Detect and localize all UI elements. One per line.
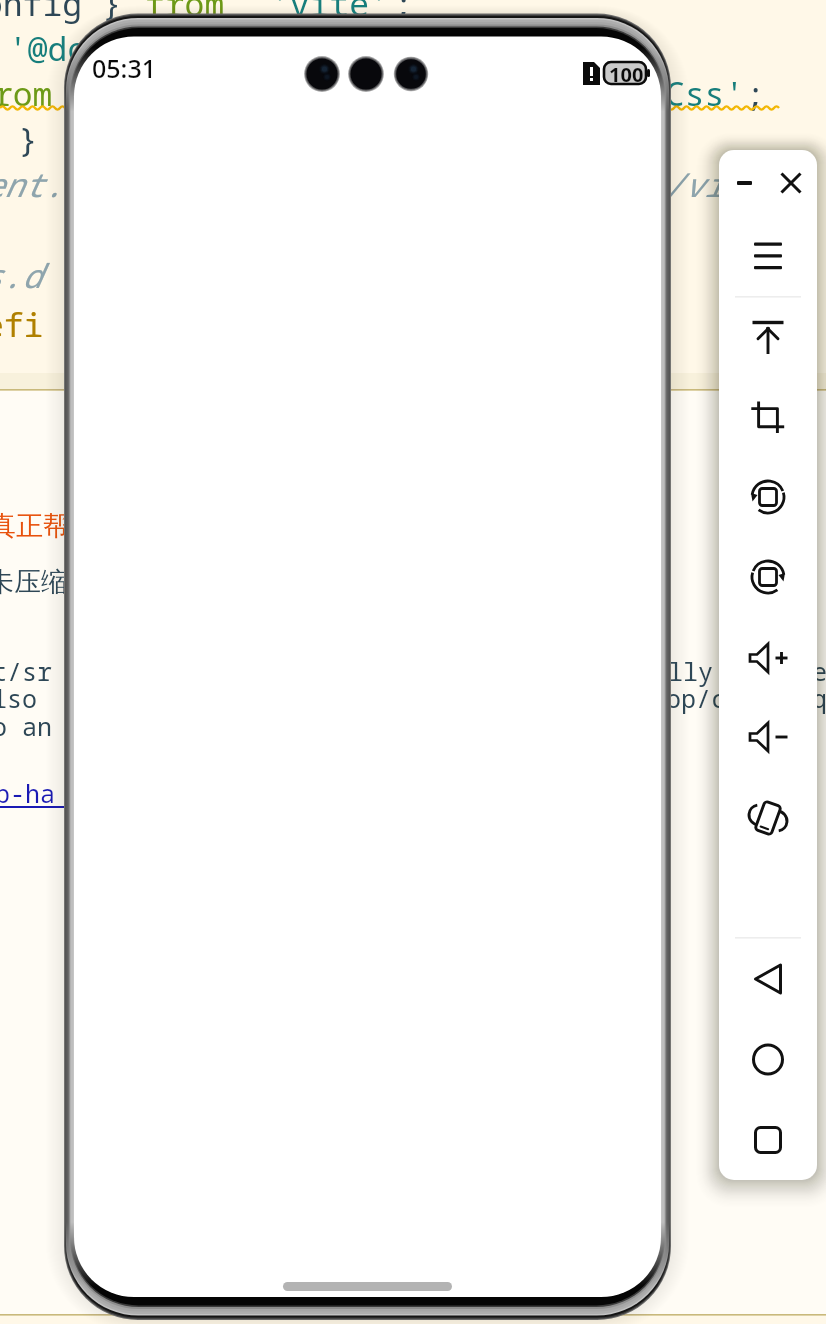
button[interactable]: Volume down: [746, 718, 790, 758]
button[interactable]: Rotate right: [748, 558, 788, 598]
staticText: onfig }: [0, 0, 122, 26]
staticText: ;: [745, 71, 765, 116]
button[interactable]: Rotate left: [748, 478, 788, 518]
staticText: op-ha: [0, 776, 56, 810]
button[interactable]: Minimize: [737, 172, 767, 196]
staticText: ;: [393, 0, 413, 26]
button[interactable]: Screen rotation: [748, 799, 788, 839]
staticText: efi: [0, 302, 44, 347]
staticText: op/c: [666, 681, 727, 715]
staticText: lly: [668, 654, 714, 688]
staticText: 真正帮助: [0, 509, 97, 543]
staticText: s.d: [0, 253, 42, 298]
staticText: 'vite': [270, 0, 389, 26]
button[interactable]: Recents: [748, 1120, 788, 1160]
button[interactable]: Volume up: [746, 639, 790, 679]
staticText: ent.: [0, 162, 64, 207]
staticText: 未压缩但: [0, 565, 95, 599]
staticText: q: [812, 681, 826, 715]
button[interactable]: Scroll to top: [748, 320, 788, 360]
button[interactable]: Crop: [748, 399, 788, 439]
staticText: t/sr: [0, 654, 53, 688]
staticText: /vi: [664, 162, 724, 207]
staticText: 100: [609, 61, 644, 88]
staticText: e: [812, 654, 826, 688]
button[interactable]: Back: [748, 960, 788, 1000]
staticText: Css': [665, 71, 745, 116]
staticText: }: [18, 117, 38, 162]
staticText: '@do: [8, 26, 88, 71]
button[interactable]: Home: [748, 1038, 788, 1078]
staticText: 05:31: [92, 51, 157, 85]
staticText: o an: [0, 709, 53, 743]
button[interactable]: Close: [778, 170, 806, 198]
staticText: from: [145, 0, 225, 26]
staticText: lso: [0, 681, 38, 715]
staticText: rom: [0, 71, 53, 116]
button[interactable]: Menu: [748, 240, 788, 276]
